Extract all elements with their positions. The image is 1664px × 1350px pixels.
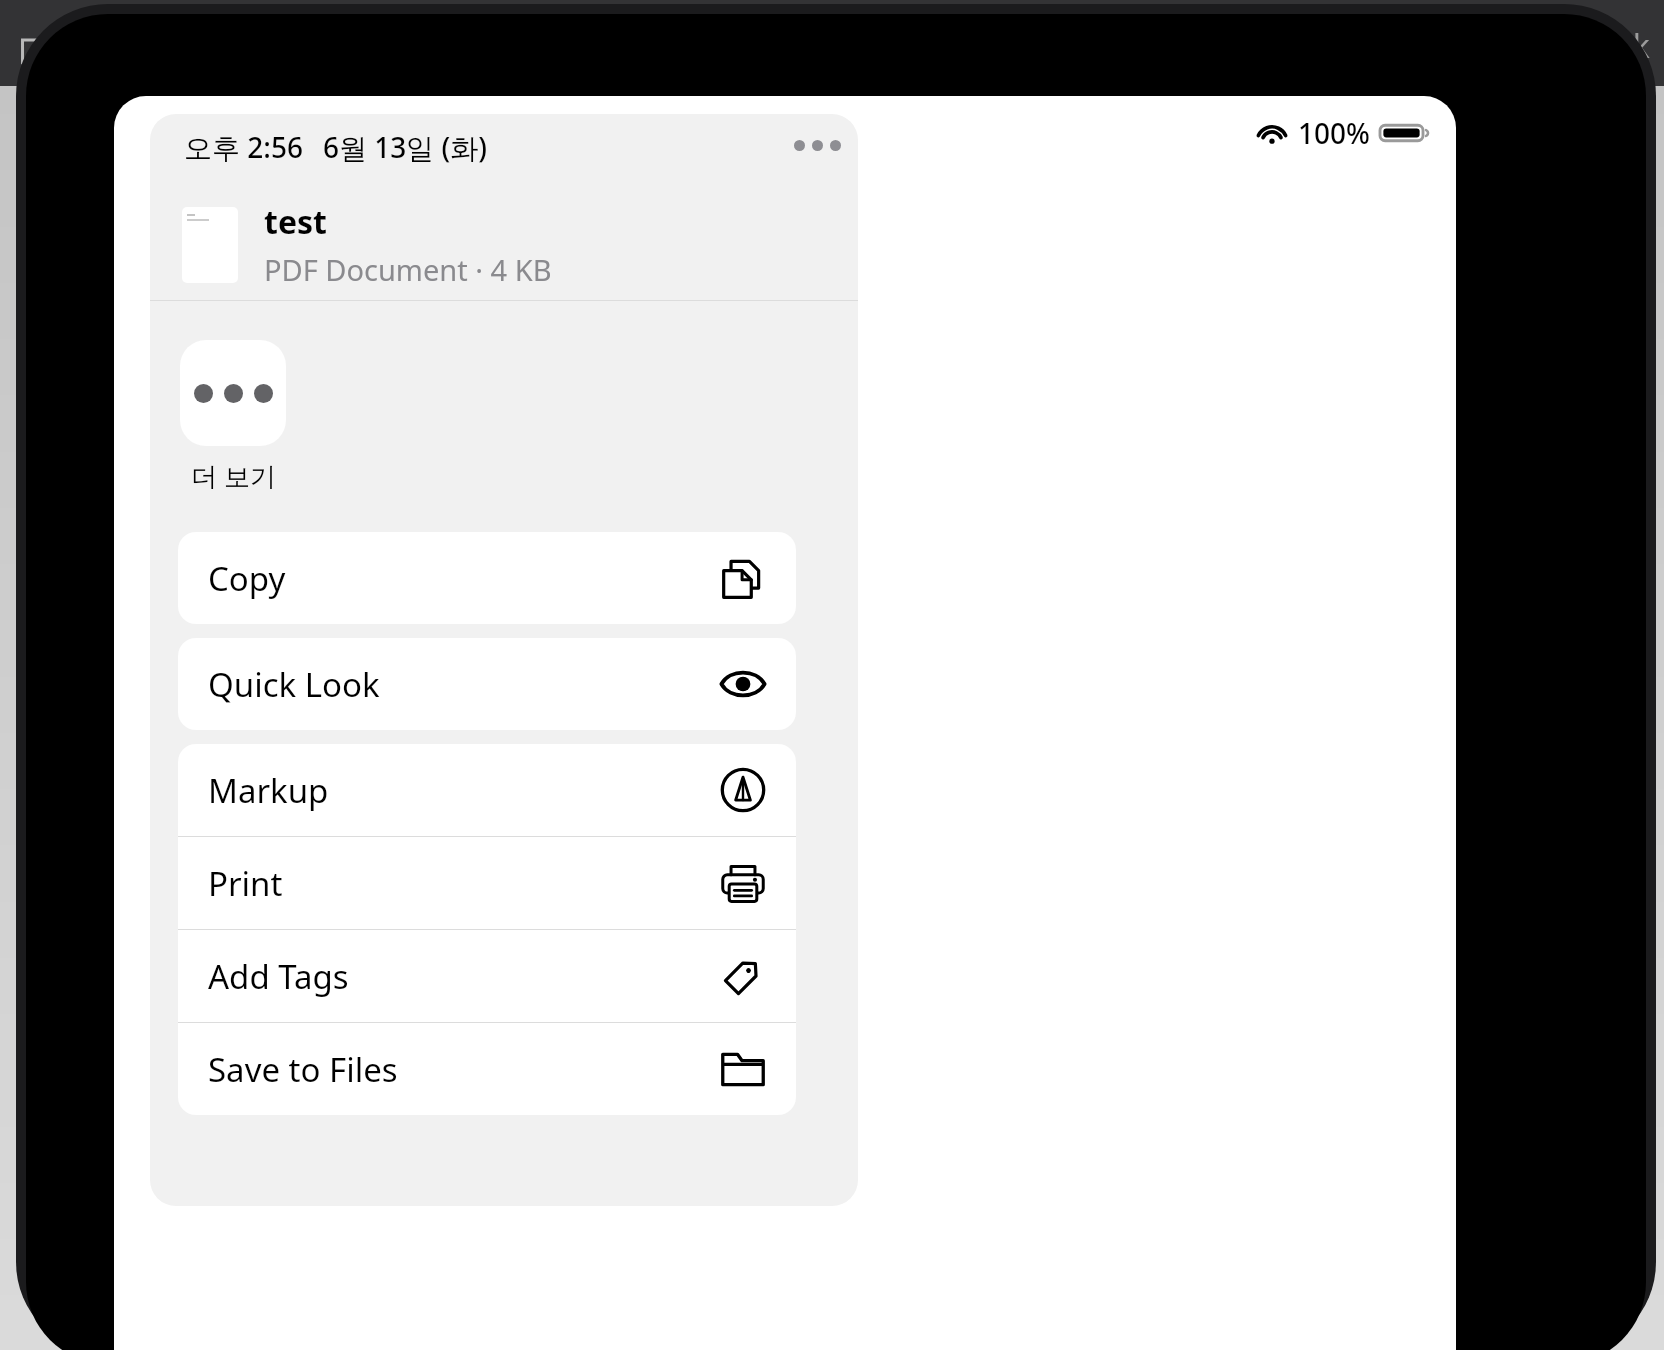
staticText: 오후 2:56 bbox=[184, 128, 303, 166]
staticText: 6월 13일 (화) bbox=[323, 128, 488, 166]
staticText: 더 보기 bbox=[191, 458, 276, 494]
staticText: PDF Document · 4 KB bbox=[264, 250, 552, 289]
button[interactable]: Copy bbox=[178, 532, 796, 624]
button[interactable]: Print bbox=[178, 837, 796, 929]
staticText: test bbox=[264, 200, 327, 244]
button[interactable]: test bbox=[150, 190, 858, 307]
staticText: Save to Files bbox=[208, 1047, 398, 1092]
staticText: Copy bbox=[208, 556, 286, 601]
button[interactable]: Add Tags bbox=[178, 930, 796, 1022]
staticText: Add Tags bbox=[208, 954, 349, 999]
button[interactable]: Markup bbox=[178, 744, 796, 836]
button[interactable]: Quick Look bbox=[178, 638, 796, 730]
staticText: ook bbox=[1594, 24, 1650, 68]
staticText: Markup bbox=[208, 768, 329, 813]
button[interactable]: More options bbox=[792, 138, 843, 153]
staticText: 100% bbox=[1298, 114, 1370, 152]
staticText: Quick Look bbox=[208, 662, 380, 707]
other: Folder bbox=[20, 30, 62, 72]
staticText: Print bbox=[208, 861, 283, 906]
button[interactable]: 더 보기 bbox=[176, 336, 290, 498]
button[interactable]: Save to Files bbox=[178, 1023, 796, 1115]
